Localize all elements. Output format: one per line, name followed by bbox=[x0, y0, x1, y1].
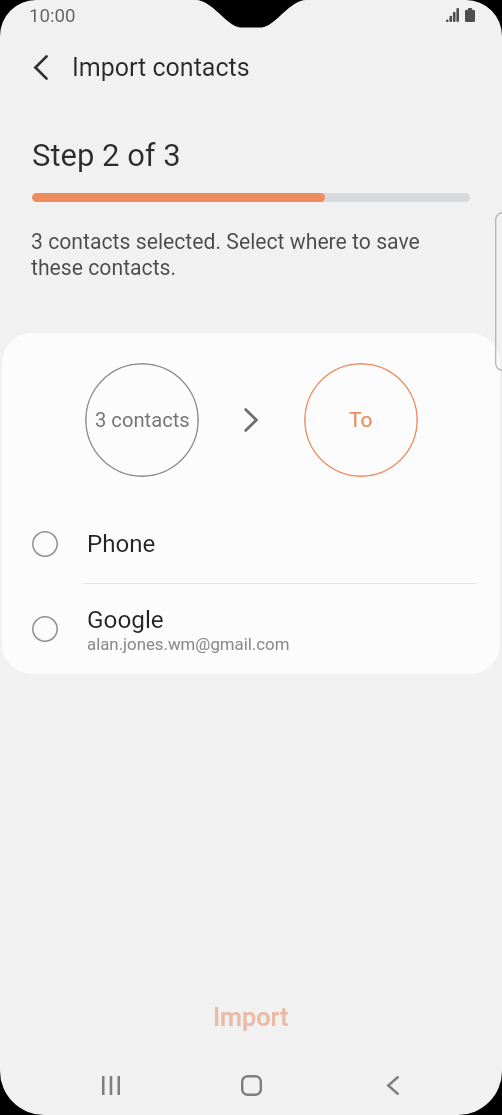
button[interactable]: Phone bbox=[2, 513, 500, 574]
button[interactable]: Back bbox=[19, 45, 63, 89]
button[interactable]: Google bbox=[2, 584, 500, 674]
staticText: Import bbox=[213, 1003, 289, 1033]
staticText: 10:00 bbox=[29, 5, 76, 27]
button[interactable]: Home bbox=[211, 1060, 291, 1115]
staticText: 3 contacts bbox=[95, 408, 190, 432]
button[interactable]: 3 contacts bbox=[85, 363, 199, 477]
staticText: Step 2 of 3 bbox=[32, 137, 181, 173]
staticText: Phone bbox=[87, 530, 156, 558]
staticText: To bbox=[349, 408, 373, 433]
staticText: alan.jones.wm@gmail.com bbox=[87, 634, 290, 654]
staticText: 3 contacts selected. Select where to sav… bbox=[31, 229, 442, 280]
button[interactable]: Import bbox=[0, 989, 502, 1047]
button[interactable]: To bbox=[304, 363, 418, 477]
button[interactable]: Back bbox=[353, 1060, 433, 1115]
button[interactable]: Recent apps bbox=[71, 1060, 151, 1115]
staticText: Import contacts bbox=[72, 53, 250, 82]
staticText: Google bbox=[87, 605, 164, 633]
